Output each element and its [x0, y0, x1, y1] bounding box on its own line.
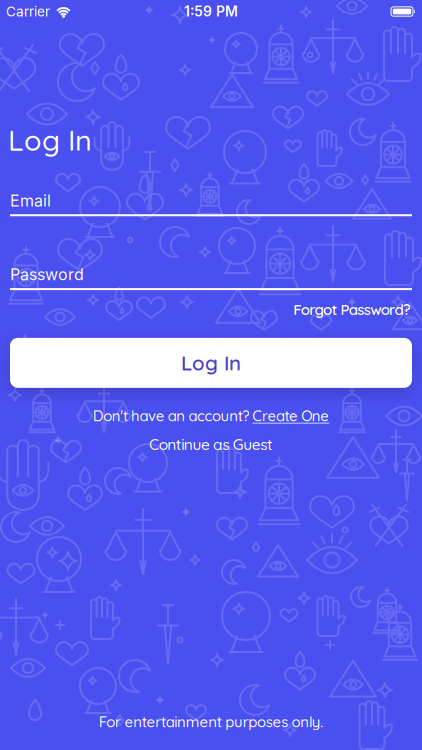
staticText: Password	[10, 265, 84, 284]
staticText: Forgot Password?	[293, 300, 411, 319]
button[interactable]: Continue as Guest	[0, 434, 422, 454]
staticText: Email	[10, 191, 51, 210]
button[interactable]: Email	[10, 191, 412, 216]
button[interactable]: Don't have an account? Create One	[0, 406, 422, 425]
staticText: Log In	[181, 350, 241, 376]
staticText: Continue as Guest	[149, 434, 273, 454]
staticText: Log In	[8, 122, 92, 158]
staticText: Don't have an account? Create One	[93, 406, 329, 425]
staticText: 1:59 PM	[184, 3, 238, 20]
staticText: Carrier	[6, 3, 50, 20]
button[interactable]: Log In	[10, 338, 412, 388]
staticText: For entertainment purposes only.	[99, 712, 323, 731]
button[interactable]: Password	[10, 265, 412, 290]
button[interactable]: Forgot Password?	[293, 300, 411, 319]
